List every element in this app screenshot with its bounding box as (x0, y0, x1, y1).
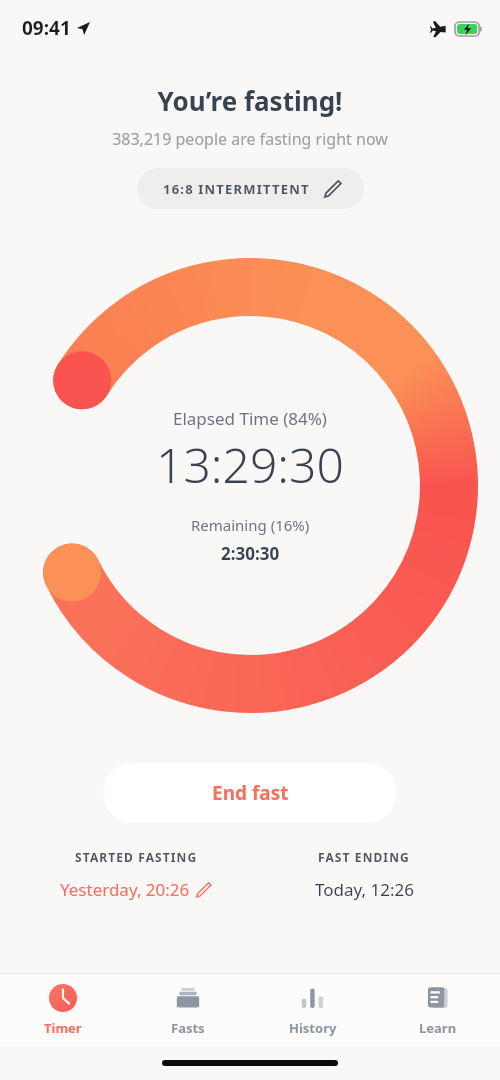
other: Edit start time (195, 881, 212, 898)
staticText: 383,219 people are fasting right now (0, 128, 500, 150)
staticText: 13:29:30 (156, 432, 344, 497)
button[interactable]: Yesterday, 20:26 (60, 878, 212, 901)
staticText: Timer (44, 1019, 82, 1037)
button[interactable]: Timer (0, 974, 125, 1046)
staticText: STARTED FASTING (75, 849, 198, 865)
staticText: Remaining (16%) (191, 515, 310, 535)
staticText: FAST ENDING (318, 849, 410, 865)
staticText: End fast (212, 780, 289, 806)
staticText: Elapsed Time (84%) (173, 407, 327, 430)
staticText: Today, 12:26 (315, 878, 414, 901)
staticText: 16:8 INTERMITTENT (163, 180, 310, 198)
button[interactable]: 16:8 INTERMITTENT (137, 168, 364, 209)
staticText: 2:30:30 (221, 542, 280, 565)
staticText: History (289, 1019, 337, 1037)
staticText: Fasts (171, 1019, 205, 1037)
other: Edit plan (323, 179, 342, 198)
staticText: Learn (419, 1019, 457, 1037)
staticText: Yesterday, 20:26 (60, 878, 190, 901)
button[interactable]: End fast (103, 763, 397, 823)
button[interactable]: Fasts (125, 974, 250, 1046)
staticText: You’re fasting! (0, 83, 500, 118)
button[interactable]: History (250, 974, 375, 1046)
staticText: 09:41 (22, 15, 71, 41)
button[interactable]: Learn (375, 974, 500, 1046)
